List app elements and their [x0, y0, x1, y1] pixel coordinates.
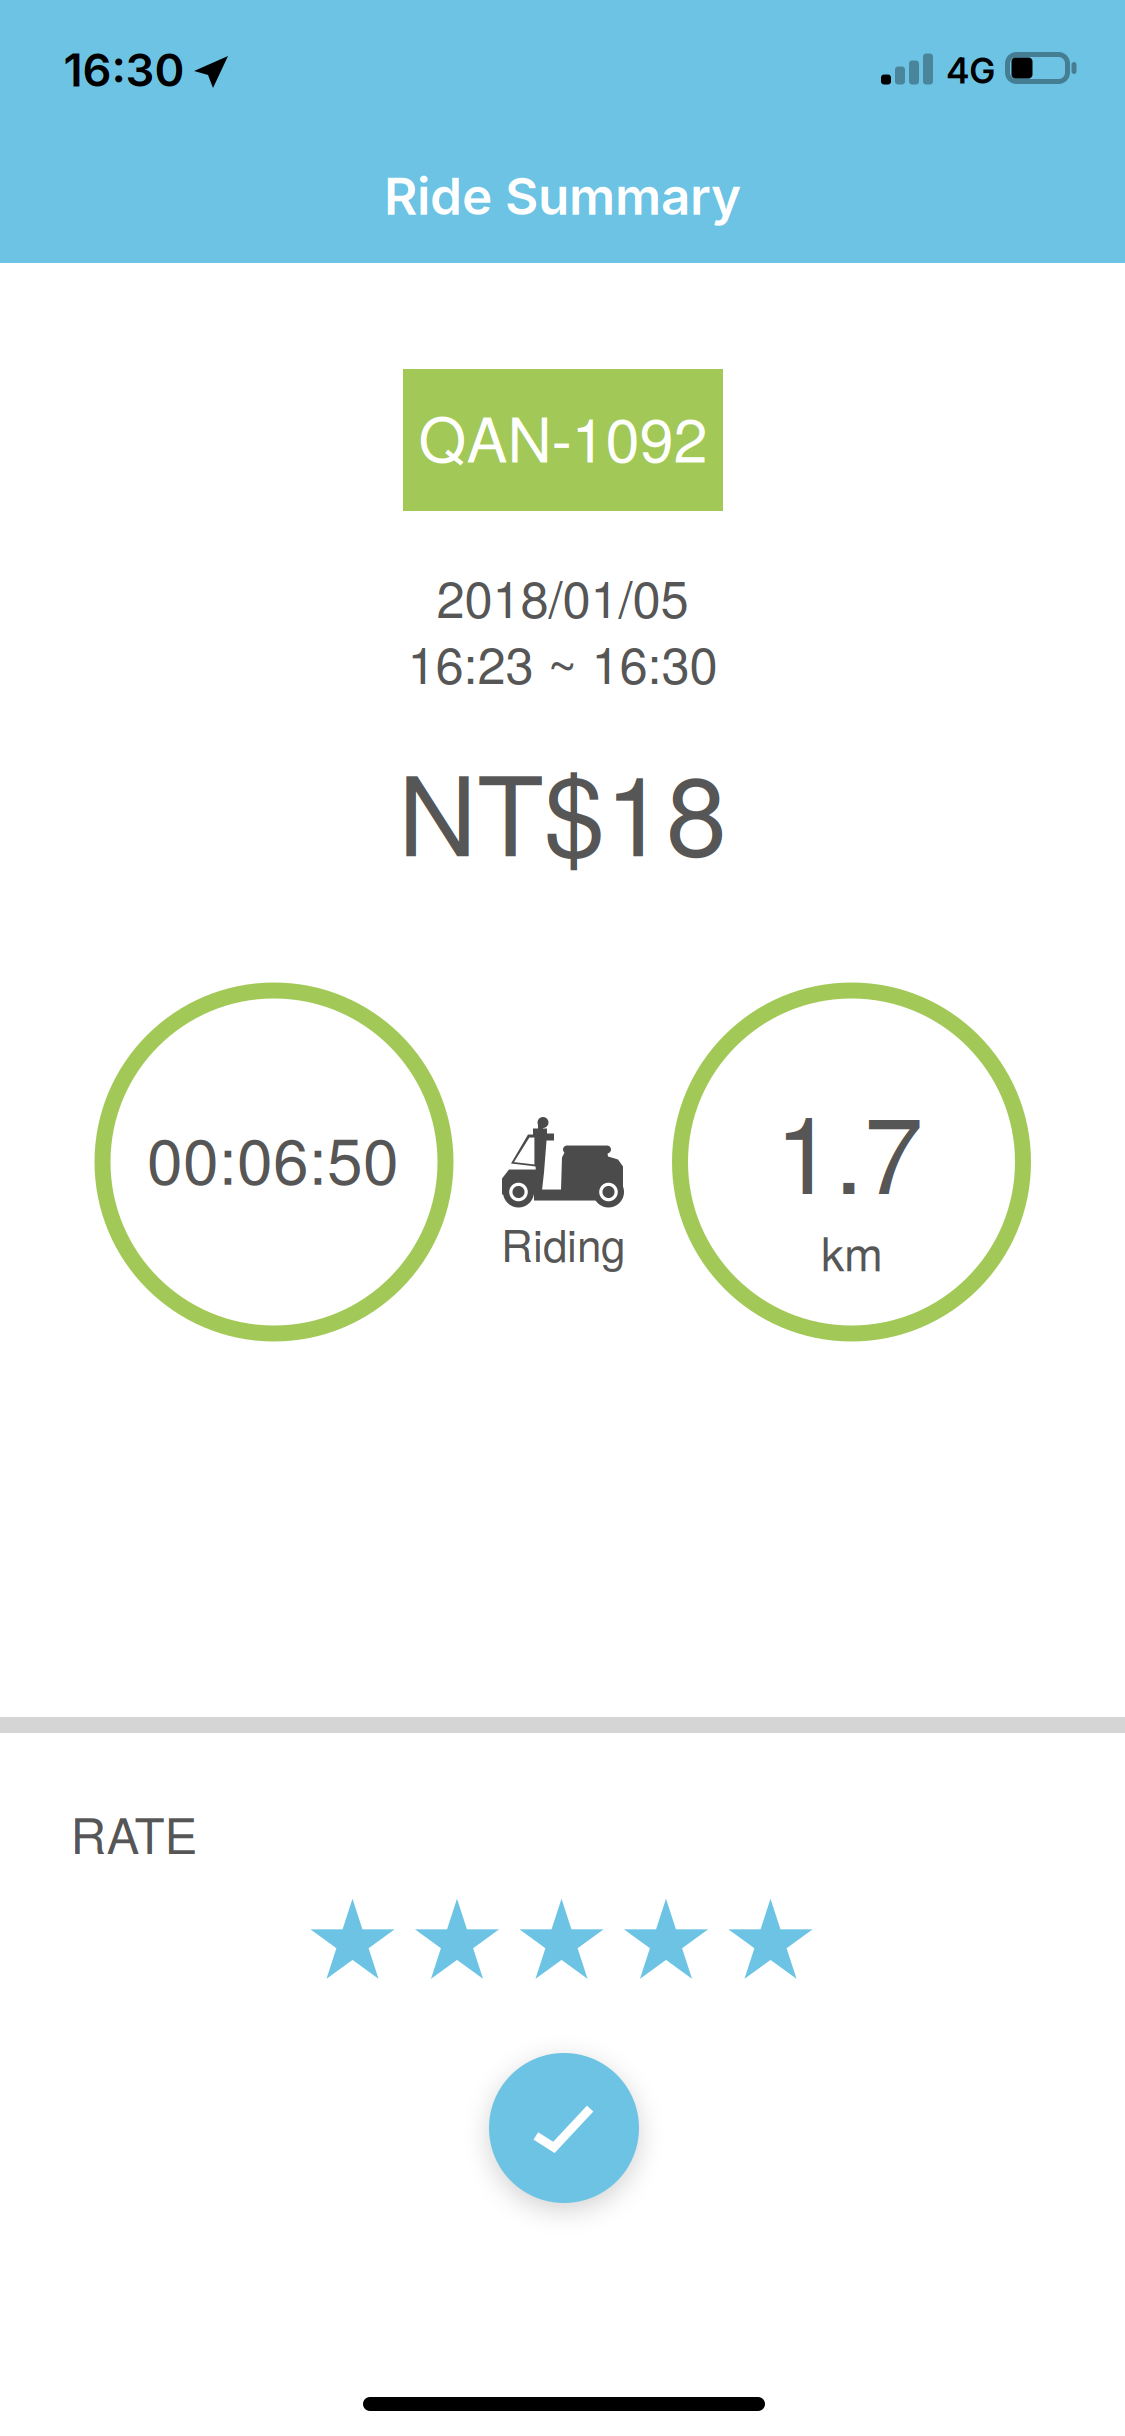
button[interactable]: Rate star [729, 1904, 812, 1982]
button[interactable]: Rate star [520, 1904, 603, 1982]
staticText: 4G [946, 50, 995, 92]
button[interactable]: Rate star [311, 1904, 394, 1982]
staticText: 1.7 [775, 1072, 923, 1224]
staticText: NT$18 [398, 731, 727, 887]
staticText: 16:23 ~ 16:30 [407, 626, 717, 698]
staticText: Riding [501, 1211, 625, 1274]
staticText: km [821, 1218, 883, 1284]
button[interactable]: Rate star [416, 1904, 498, 1982]
staticText: Ride Summary [384, 165, 741, 227]
button[interactable]: Rate star [625, 1904, 707, 1982]
staticText: QAN-1092 [418, 392, 707, 480]
staticText: 16:30 [63, 43, 184, 97]
button[interactable]: Confirm rating [489, 2053, 639, 2203]
staticText: RATE [70, 1798, 197, 1868]
staticText: 00:06:50 [147, 1111, 399, 1203]
staticText: 2018/01/05 [436, 560, 688, 632]
